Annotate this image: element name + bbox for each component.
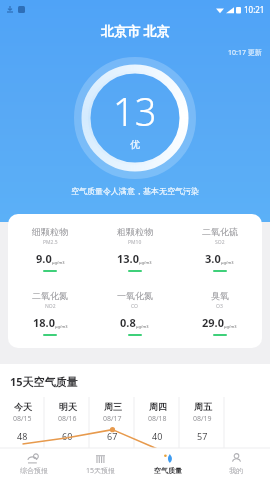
staticText: 13	[113, 85, 157, 137]
staticText: 3.0	[205, 251, 221, 266]
button[interactable]: 粗颗粒物	[92, 226, 177, 272]
staticText: 40	[152, 430, 163, 442]
staticText: 我的	[229, 466, 243, 475]
staticText: 08/19	[193, 414, 212, 424]
staticText: 60	[62, 430, 73, 442]
staticText: μg/m3	[52, 260, 65, 265]
button[interactable]: 二氧化硫	[177, 226, 262, 272]
button[interactable]: 我的	[202, 448, 270, 480]
staticText: 细颗粒物	[32, 226, 68, 237]
staticText: 18.0	[33, 315, 55, 330]
staticText: 08/17	[103, 414, 122, 424]
staticText: μg/m3	[221, 260, 234, 265]
staticText: 空气质量	[154, 466, 182, 475]
staticText: 48	[17, 430, 28, 442]
staticText: 67	[107, 430, 118, 442]
staticText: 57	[197, 430, 208, 442]
staticText: 二氧化氮	[32, 290, 68, 301]
staticText: 0.8	[120, 315, 136, 330]
button[interactable]: 周三	[90, 397, 135, 448]
staticText: 15天预报	[86, 466, 116, 476]
staticText: 08/16	[58, 414, 77, 424]
staticText: μg/m3	[224, 324, 237, 329]
staticText: 臭氧	[211, 290, 229, 301]
staticText: 一氧化氮	[117, 290, 153, 301]
staticText: 周五	[194, 401, 212, 412]
staticText: 10:21	[244, 4, 265, 15]
staticText: 粗颗粒物	[117, 226, 153, 237]
button[interactable]: 二氧化氮	[8, 290, 92, 336]
button[interactable]: 一氧化氮	[92, 290, 177, 336]
staticText: NO2	[45, 303, 56, 310]
staticText: μg/m3	[139, 260, 152, 265]
staticText: CO	[131, 303, 138, 310]
staticText: PM2.5	[43, 239, 58, 246]
staticText: 今天	[14, 401, 32, 412]
staticText: μg/m3	[55, 324, 68, 329]
staticText: 9.0	[36, 251, 52, 266]
staticText: 周四	[149, 401, 167, 412]
staticText: 08/15	[13, 414, 32, 424]
staticText: 优	[130, 138, 140, 151]
staticText: μg/m3	[136, 324, 149, 329]
button[interactable]: 臭氧	[177, 290, 262, 336]
staticText: O3	[216, 303, 223, 310]
button[interactable]: 今天	[0, 397, 45, 448]
staticText: 二氧化硫	[202, 226, 238, 237]
staticText: SO2	[215, 239, 225, 246]
button[interactable]: 空气质量	[134, 448, 202, 480]
button[interactable]: 明天	[45, 397, 90, 448]
button[interactable]: 综合预报	[0, 448, 67, 480]
staticText: 空气质量令人满意，基本无空气污染	[71, 186, 199, 196]
button[interactable]: 周五	[180, 397, 225, 448]
staticText: 08/18	[148, 414, 167, 424]
staticText: 明天	[59, 401, 77, 412]
staticText: PM10	[128, 239, 142, 246]
staticText: 10:17 更新	[228, 48, 262, 58]
staticText: 29.0	[202, 315, 224, 330]
staticText: 北京市 北京	[101, 22, 170, 40]
staticText: 综合预报	[20, 466, 48, 475]
button[interactable]: 15天预报	[67, 448, 134, 480]
button[interactable]: 细颗粒物	[8, 226, 92, 272]
button[interactable]: 周四	[135, 397, 180, 448]
staticText: 周三	[104, 401, 122, 412]
staticText: 13.0	[117, 251, 139, 266]
staticText: 15天空气质量	[10, 374, 78, 389]
